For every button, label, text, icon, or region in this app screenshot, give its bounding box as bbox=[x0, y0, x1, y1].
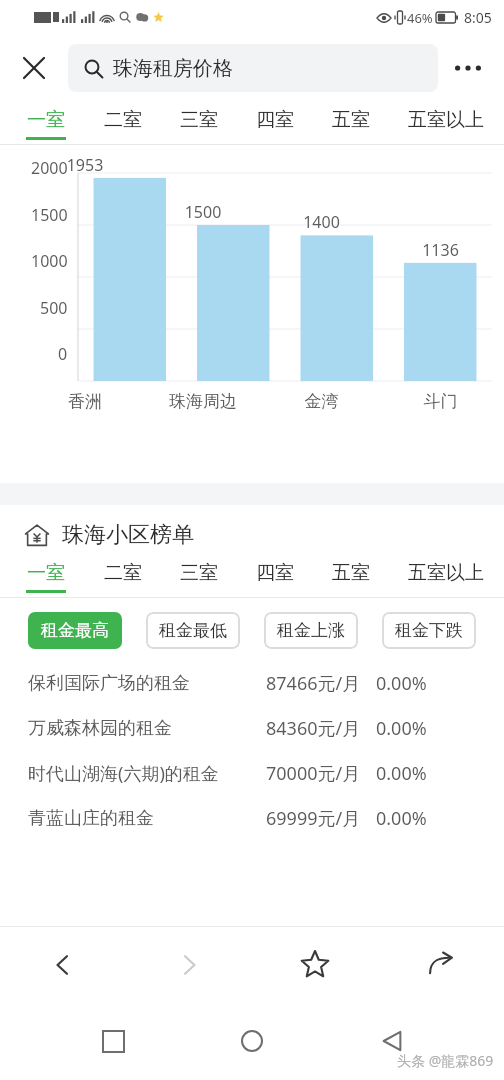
staticText: 四室 bbox=[256, 561, 294, 585]
button[interactable]: 三室 bbox=[178, 108, 220, 144]
button[interactable]: 万威森林园的租金 bbox=[0, 706, 504, 751]
button[interactable]: Recent apps bbox=[86, 1014, 140, 1068]
button[interactable]: 租金下跌 bbox=[382, 612, 476, 649]
button[interactable]: 时代山湖海(六期)的租金 bbox=[0, 751, 504, 796]
staticText: 0.00% bbox=[376, 671, 427, 696]
staticText: 0.00% bbox=[376, 761, 427, 786]
staticText: 8:05 bbox=[464, 8, 492, 27]
button[interactable]: 五室 bbox=[330, 108, 372, 144]
staticText: 1000 bbox=[31, 250, 68, 272]
button[interactable]: More options bbox=[444, 44, 492, 92]
button[interactable]: Share bbox=[413, 937, 469, 993]
staticText: 头条 @龍霖869 bbox=[397, 1051, 494, 1070]
staticText: 0.00% bbox=[376, 806, 427, 831]
staticText: 金湾 bbox=[262, 391, 381, 412]
staticText: 珠海租房价格 bbox=[113, 56, 233, 81]
staticText: 五室以上 bbox=[408, 108, 484, 132]
staticText: 0.00% bbox=[376, 716, 427, 741]
staticText: 租金上涨 bbox=[277, 620, 345, 641]
staticText: 二室 bbox=[104, 108, 142, 132]
staticText: 500 bbox=[40, 297, 68, 319]
button[interactable]: 五室以上 bbox=[406, 561, 486, 597]
button[interactable]: Forward bbox=[161, 937, 217, 993]
staticText: 租金最低 bbox=[159, 620, 227, 641]
staticText: 五室 bbox=[332, 561, 370, 585]
staticText: 斗门 bbox=[381, 391, 500, 412]
staticText: 青蓝山庄的租金 bbox=[28, 807, 266, 830]
button[interactable]: Home bbox=[225, 1014, 279, 1068]
staticText: 租金最高 bbox=[41, 620, 109, 641]
button[interactable]: 一室 bbox=[24, 108, 68, 144]
staticText: 租金下跌 bbox=[395, 620, 463, 641]
staticText: 二室 bbox=[104, 561, 142, 585]
staticText: 珠海小区榜单 bbox=[62, 521, 194, 549]
button[interactable]: 三室 bbox=[178, 561, 220, 597]
staticText: 保利国际广场的租金 bbox=[28, 672, 266, 695]
button[interactable]: 珠海租房价格 bbox=[68, 44, 438, 92]
staticText: 香洲 bbox=[26, 391, 144, 412]
button[interactable]: 青蓝山庄的租金 bbox=[0, 796, 504, 841]
staticText: 珠海周边 bbox=[144, 391, 262, 412]
button[interactable]: 五室以上 bbox=[406, 108, 486, 144]
staticText: 1400 bbox=[262, 211, 381, 233]
staticText: 70000元/月 bbox=[266, 761, 376, 786]
button[interactable]: 保利国际广场的租金 bbox=[0, 661, 504, 706]
staticText: 1500 bbox=[31, 204, 68, 226]
button[interactable]: Back bbox=[35, 937, 91, 993]
staticText: 87466元/月 bbox=[266, 671, 376, 696]
button[interactable]: 四室 bbox=[254, 108, 296, 144]
staticText: 一室 bbox=[27, 561, 65, 585]
staticText: 1136 bbox=[381, 239, 500, 261]
button[interactable]: 二室 bbox=[102, 108, 144, 144]
button[interactable]: Close bbox=[12, 46, 56, 90]
staticText: 时代山湖海(六期)的租金 bbox=[28, 761, 266, 786]
button[interactable]: 二室 bbox=[102, 561, 144, 597]
button[interactable]: 一室 bbox=[24, 561, 68, 597]
staticText: 五室以上 bbox=[408, 561, 484, 585]
staticText: 84360元/月 bbox=[266, 716, 376, 741]
button[interactable]: 四室 bbox=[254, 561, 296, 597]
staticText: 四室 bbox=[256, 108, 294, 132]
staticText: 0 bbox=[58, 343, 68, 365]
button[interactable]: 五室 bbox=[330, 561, 372, 597]
staticText: 一室 bbox=[27, 108, 65, 132]
staticText: 69999元/月 bbox=[266, 806, 376, 831]
staticText: 万威森林园的租金 bbox=[28, 717, 266, 740]
button[interactable]: Bookmark bbox=[287, 937, 343, 993]
button[interactable]: 租金最低 bbox=[146, 612, 240, 649]
staticText: 三室 bbox=[180, 108, 218, 132]
staticText: 三室 bbox=[180, 561, 218, 585]
button[interactable]: 租金上涨 bbox=[264, 612, 358, 649]
staticText: 五室 bbox=[332, 108, 370, 132]
staticText: 1953 bbox=[26, 154, 144, 176]
staticText: 1500 bbox=[144, 201, 262, 223]
button[interactable]: Back bbox=[365, 1014, 419, 1068]
button[interactable]: 租金最高 bbox=[28, 612, 122, 649]
staticText: 46% bbox=[407, 9, 433, 27]
staticText: 2000 bbox=[31, 157, 68, 179]
